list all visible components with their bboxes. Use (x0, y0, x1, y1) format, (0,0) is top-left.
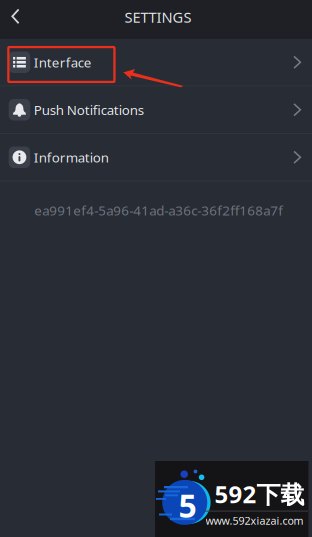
button[interactable]: Back (0, 2, 32, 37)
staticText: SETTINGS (124, 7, 191, 27)
staticText: 592下载 (214, 478, 304, 510)
button[interactable]: Interface (0, 39, 312, 85)
staticText: Push Notifications (34, 101, 144, 119)
staticText: Interface (34, 53, 92, 71)
button[interactable]: Information (0, 134, 312, 180)
button[interactable]: Push Notifications (0, 86, 312, 133)
staticText: www.592xiazai.com (205, 513, 303, 528)
staticText: 5 (178, 484, 196, 526)
staticText: ea991ef4-5a96-41ad-a36c-36f2ff168a7f (34, 201, 283, 219)
staticText: Information (34, 148, 109, 166)
